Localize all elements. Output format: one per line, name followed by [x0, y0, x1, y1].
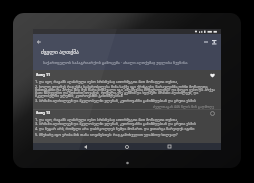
button[interactable]: More options	[209, 36, 220, 48]
staticText: მათე 11	[36, 72, 51, 77]
button[interactable]: Home	[115, 143, 139, 150]
button[interactable]: Mark as read	[207, 108, 217, 118]
staticText: მათე 13	[36, 110, 51, 115]
button[interactable]: Font size	[200, 36, 211, 48]
button[interactable]: Recent apps	[157, 143, 181, 150]
staticText: 4. და ნეტარ არს, რომელი არა დაბრკოლდეს ჩ…	[35, 126, 218, 131]
staticText: 5. მწუხარე იყო ერისა მის თანა იოვანესთჳს…	[35, 132, 218, 137]
staticText: ძველი აღთქმა	[41, 48, 79, 55]
staticText: 3. ბრმანი აღიხილვენ და მკელობელნი ვლენან…	[35, 98, 218, 103]
staticText: ძველთაგან 446 წლის წინ გადმოღე	[153, 104, 214, 109]
staticText: 1. და იყო, რაჟამს აღასრულა იესო ბრძანება…	[35, 79, 218, 84]
staticText: საქართველოს საპატრიარქოს გამოცემა · ახალ…	[43, 60, 188, 65]
staticText: 3. ბრმანი აღიხილვენ და მკელობელნი ვლენან…	[35, 121, 218, 126]
button[interactable]: Navigate up	[33, 36, 45, 48]
button[interactable]: Bookmark	[207, 70, 217, 80]
staticText: 2. ხოლო იოვანეს რაჲ ესმა საპყრობილესა ში…	[35, 84, 218, 98]
button[interactable]: Back	[73, 143, 97, 150]
staticText: 1. და იყო, რაჟამს აღასრულა იესო ბრძანება…	[35, 117, 218, 122]
